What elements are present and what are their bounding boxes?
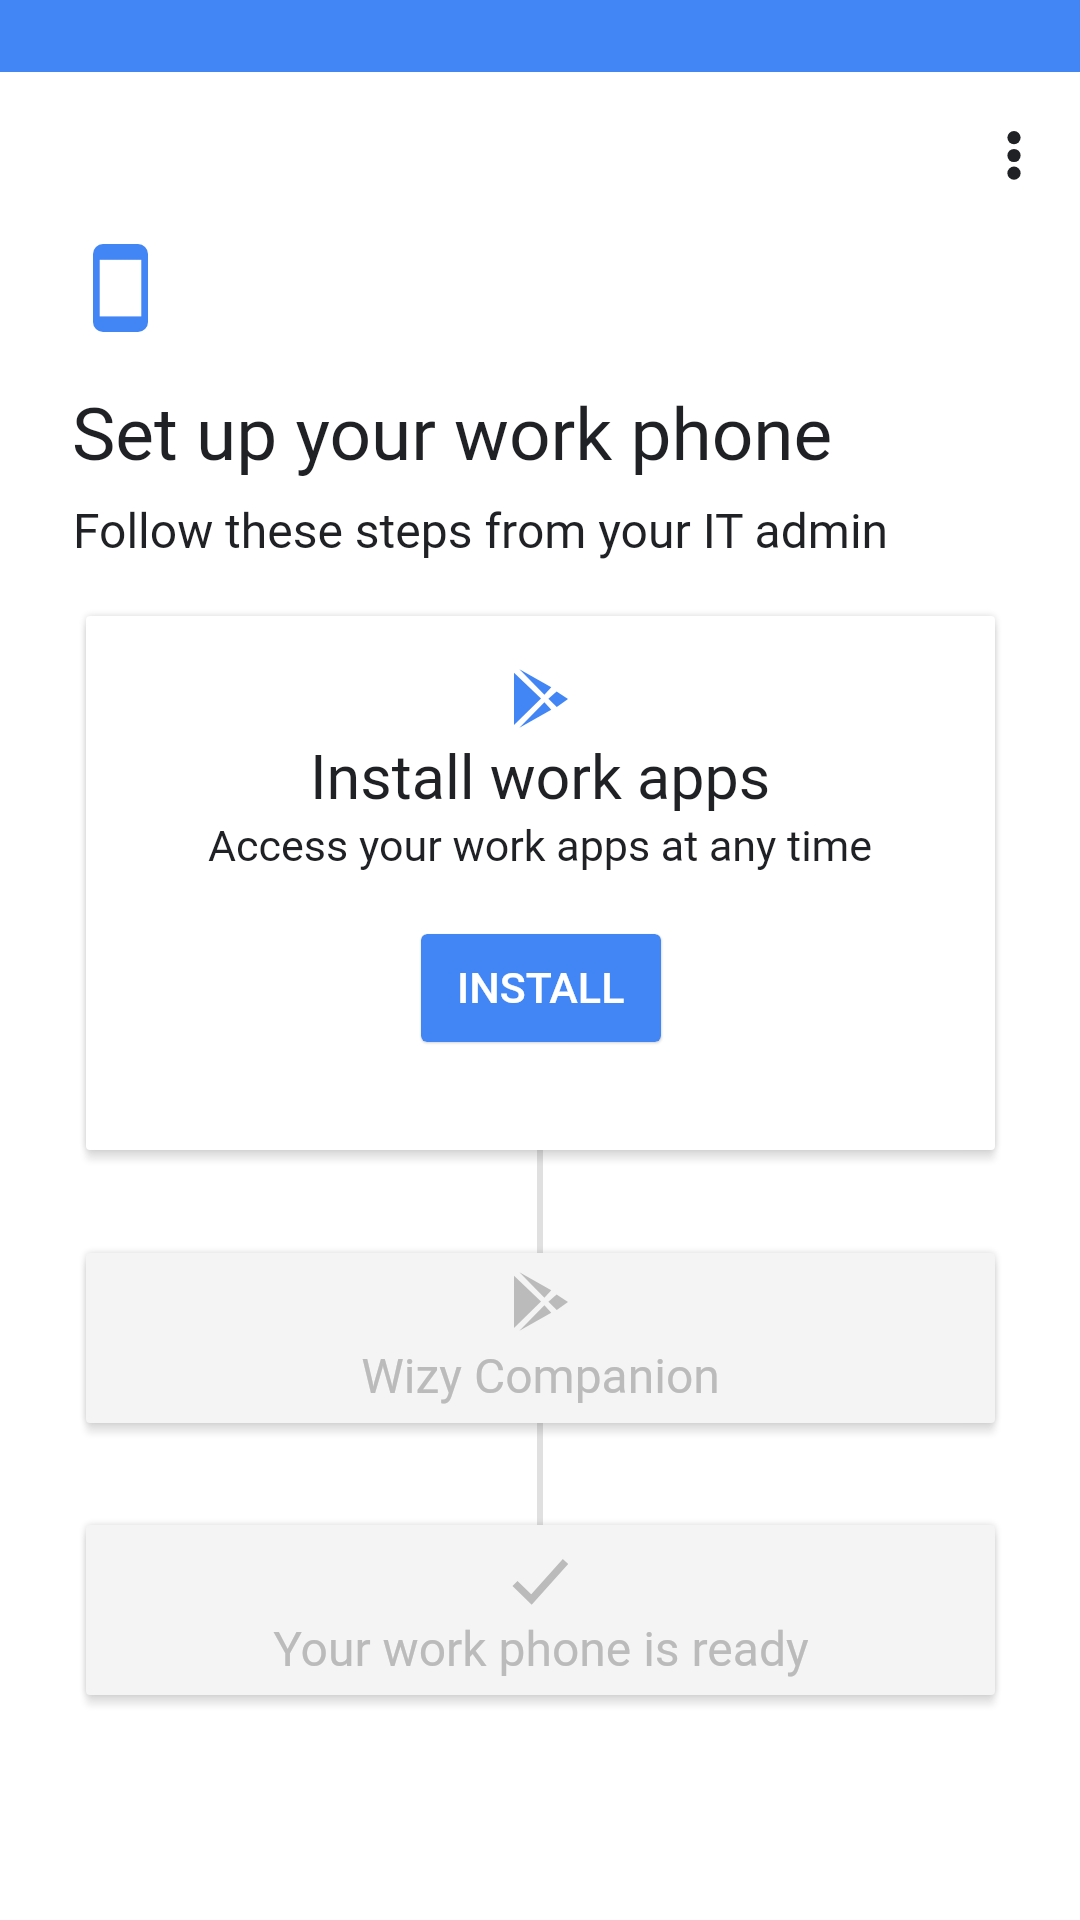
button[interactable]: Your work phone is ready [86,1525,995,1695]
staticText: Set up your work phone [72,392,833,478]
button[interactable]: More options [966,108,1062,204]
button[interactable]: Wizy Companion [86,1253,995,1423]
staticText: INSTALL [457,963,625,1013]
staticText: Install work apps [310,742,771,813]
staticText: Access your work apps at any time [208,821,873,871]
button[interactable]: INSTALL [421,934,661,1042]
staticText: Follow these steps from your IT admin [73,503,889,559]
staticText: Your work phone is ready [273,1621,809,1677]
staticText: Wizy Companion [361,1348,720,1404]
